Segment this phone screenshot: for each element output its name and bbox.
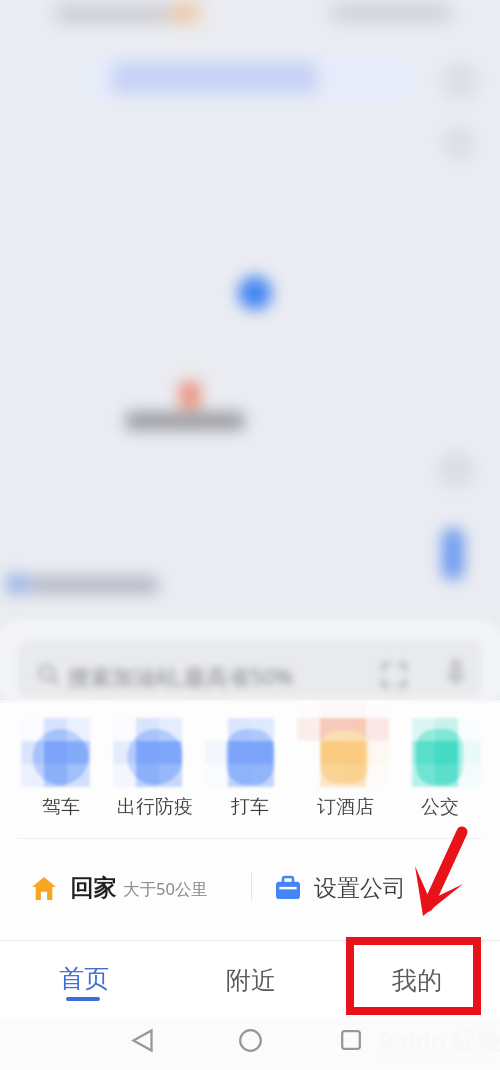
staticText: 订酒店 <box>317 795 374 819</box>
button[interactable]: Recent apps <box>327 1016 375 1064</box>
staticText: 搜索加油站,最高省50% <box>68 661 294 691</box>
button[interactable]: 首页 <box>0 941 167 1019</box>
button[interactable]: 我的 <box>333 941 500 1019</box>
staticText: 出行防疫 <box>117 795 193 819</box>
staticText: 回家 <box>70 874 116 903</box>
button[interactable]: 驾车 <box>13 704 109 820</box>
button[interactable]: 回家 <box>32 862 250 914</box>
button[interactable]: 打车 <box>202 704 298 820</box>
staticText: 打车 <box>231 795 269 819</box>
button[interactable]: 设置公司 <box>276 862 496 914</box>
button[interactable]: Home <box>226 1016 274 1064</box>
button[interactable]: 附近 <box>167 941 334 1019</box>
staticText: 首页 <box>59 963 109 994</box>
staticText: 大于50公里 <box>123 877 208 900</box>
button[interactable]: 出行防疫 <box>107 704 203 820</box>
button[interactable]: 公交 <box>392 704 488 820</box>
staticText: 附近 <box>226 965 276 996</box>
button[interactable]: 订酒店 <box>297 704 393 820</box>
staticText: 设置公司 <box>314 874 406 903</box>
button[interactable]: Back <box>118 1016 166 1064</box>
staticText: 公交 <box>421 795 459 819</box>
staticText: 驾车 <box>42 795 80 819</box>
staticText: 我的 <box>392 965 442 996</box>
